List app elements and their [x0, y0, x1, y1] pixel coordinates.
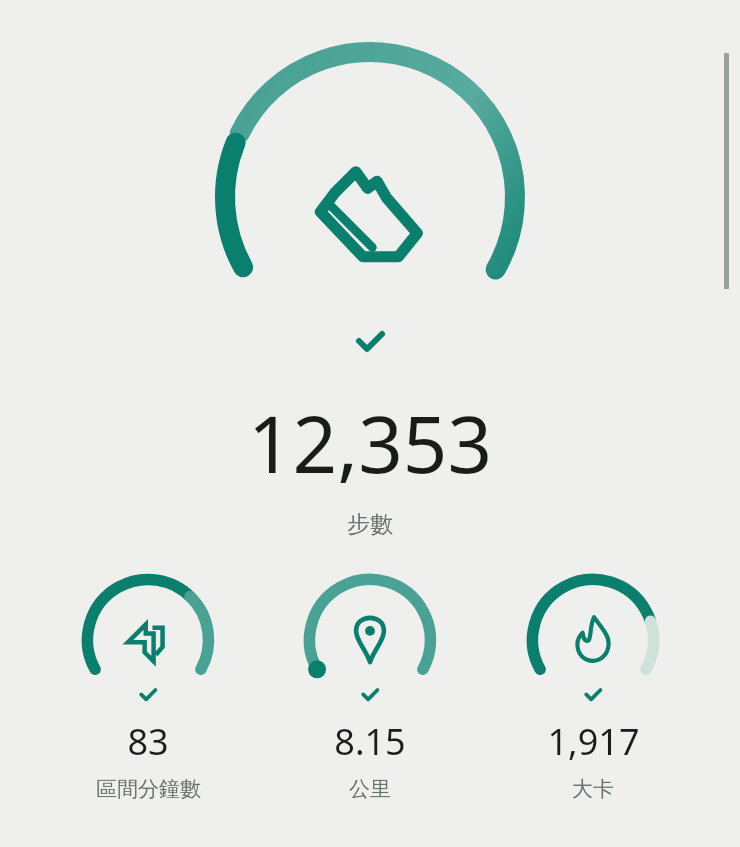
staticText: 12,353: [248, 390, 492, 496]
button[interactable]: Calories ring: [518, 565, 668, 802]
staticText: 公里: [349, 776, 391, 802]
button[interactable]: Zone minutes ring: [73, 565, 223, 802]
staticText: 8.15: [334, 717, 406, 766]
other: Zone minutes ring: [73, 565, 223, 715]
staticText: 步數: [347, 510, 393, 539]
staticText: 1,917: [547, 717, 640, 766]
button[interactable]: Distance ring: [295, 565, 445, 802]
other: Distance ring: [295, 565, 445, 715]
staticText: 區間分鐘數: [96, 776, 201, 802]
staticText: 83: [127, 717, 169, 766]
button[interactable]: Steps ring: [185, 14, 555, 384]
other: Calories ring: [518, 565, 668, 715]
staticText: 大卡: [572, 776, 614, 802]
